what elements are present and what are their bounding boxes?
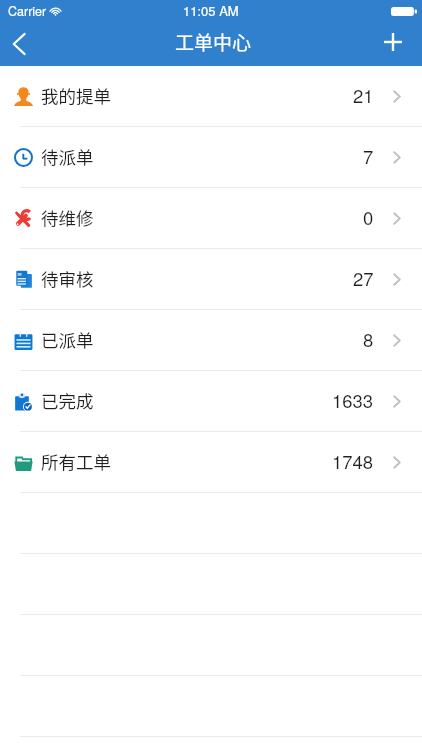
staticText: 已完成 bbox=[41, 388, 94, 413]
staticText: 已派单 bbox=[41, 327, 94, 352]
button[interactable]: 我的提单 bbox=[0, 66, 422, 126]
staticText: 21 bbox=[353, 82, 374, 108]
staticText: 27 bbox=[353, 265, 374, 291]
staticText: 11:05 AM bbox=[183, 1, 239, 20]
button[interactable]: 已派单 bbox=[0, 310, 422, 370]
button[interactable]: Add bbox=[374, 22, 422, 66]
staticText: 待派单 bbox=[41, 144, 94, 169]
staticText: 工单中心 bbox=[175, 28, 252, 56]
staticText: 待维修 bbox=[41, 205, 94, 230]
button[interactable]: 待派单 bbox=[0, 127, 422, 187]
staticText: 8 bbox=[363, 326, 374, 352]
button[interactable]: Back bbox=[0, 22, 48, 66]
staticText: 0 bbox=[363, 204, 374, 230]
staticText: 7 bbox=[363, 143, 374, 169]
button[interactable]: 所有工单 bbox=[0, 432, 422, 492]
button[interactable]: 待审核 bbox=[0, 249, 422, 309]
staticText: Carrier bbox=[8, 2, 47, 20]
staticText: 1748 bbox=[332, 448, 374, 474]
staticText: 所有工单 bbox=[41, 449, 111, 474]
staticText: 待审核 bbox=[41, 266, 94, 291]
staticText: 我的提单 bbox=[41, 83, 111, 108]
button[interactable]: 待维修 bbox=[0, 188, 422, 248]
button[interactable]: 已完成 bbox=[0, 371, 422, 431]
staticText: 1633 bbox=[332, 387, 374, 413]
